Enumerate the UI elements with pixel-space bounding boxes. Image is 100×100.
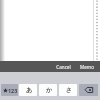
button[interactable]: Cancel: [52, 61, 75, 72]
staticText: Cancel: [56, 64, 71, 70]
button[interactable]: sa row: [59, 84, 77, 96]
staticText: Memo: [80, 64, 94, 70]
button[interactable]: ka row: [39, 84, 57, 96]
staticText: あ: [26, 86, 33, 94]
staticText: さ: [66, 86, 73, 94]
button[interactable]: Symbols and numbers: [1, 84, 18, 96]
staticText: 123: [8, 87, 18, 94]
button[interactable]: Memo: [75, 61, 98, 72]
other: Scroll: [96, 0, 100, 61]
button[interactable]: Backspace: [79, 84, 98, 96]
staticText: か: [46, 86, 53, 94]
button[interactable]: a row: [19, 84, 37, 96]
